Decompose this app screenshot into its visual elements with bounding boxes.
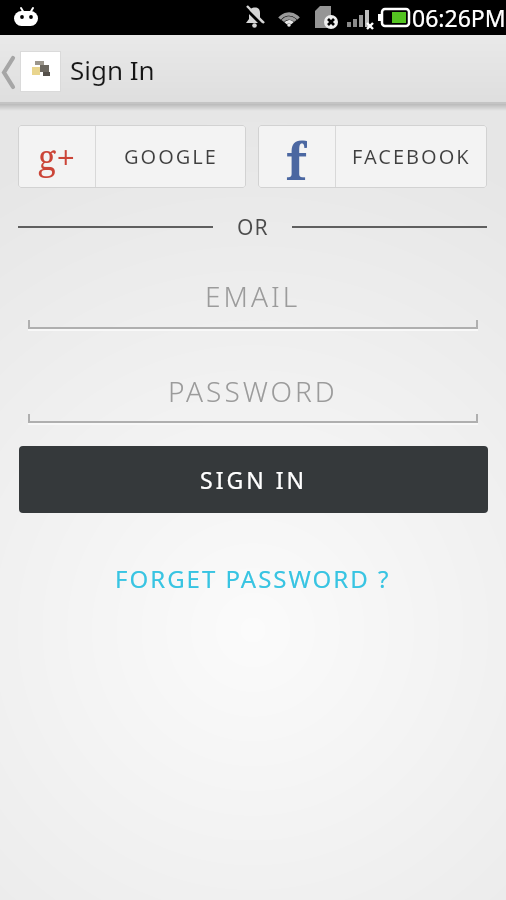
staticText: FACEBOOK [352,143,471,170]
button[interactable] [0,35,18,104]
button[interactable]: FORGET PASSWORD ? [115,562,391,595]
staticText: SIGN IN [200,464,307,495]
staticText: 06:26PM [412,2,506,33]
button[interactable]: f [258,125,487,188]
button[interactable]: EMAIL [28,270,478,329]
staticText: GOOGLE [124,143,218,170]
staticText: FORGET PASSWORD ? [115,562,391,595]
button[interactable]: SIGN IN [19,446,488,513]
staticText: OR [237,213,269,242]
staticText: f [286,127,307,188]
staticText: g+ [38,134,76,180]
staticText: Sign In [70,52,155,87]
button[interactable]: PASSWORD [28,364,478,423]
button[interactable]: g+ [18,125,246,188]
staticText: PASSWORD [168,372,338,410]
staticText: EMAIL [205,277,301,315]
